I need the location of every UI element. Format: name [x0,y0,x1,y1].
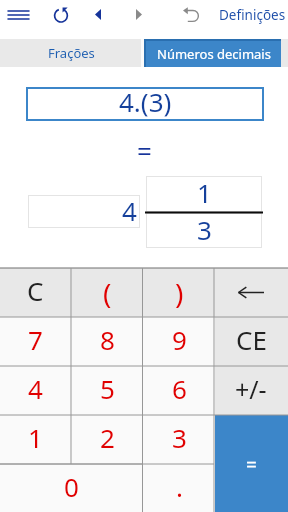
staticText: 9 [172,322,187,357]
staticText: Frações [48,44,95,62]
button[interactable]: 0 [0,464,143,512]
staticText: = [137,133,152,157]
staticText: 5 [100,371,115,406]
staticText: 4 [122,193,137,226]
button[interactable]: = [214,415,288,512]
button[interactable]: 4.(3) [26,87,264,121]
button[interactable]: Refresh [46,0,76,30]
staticText: 3 [172,420,187,455]
staticText: Definições [219,6,286,24]
button[interactable]: 1 [0,415,71,464]
staticText: = [246,452,257,478]
button[interactable]: 9 [143,317,215,366]
staticText: . [176,469,183,504]
button[interactable]: 6 [143,366,215,415]
button[interactable]: 4 [0,366,71,415]
staticText: 7 [28,322,43,357]
staticText: 4 [28,371,43,406]
button[interactable]: ( [71,268,143,317]
button[interactable]: Backspace [214,268,288,317]
button[interactable]: Frações [2,39,141,67]
staticText: 2 [100,420,115,455]
staticText: 1 [197,175,212,210]
staticText: 8 [100,322,115,357]
button[interactable]: . [143,464,215,512]
button[interactable]: +/- [214,366,288,415]
button[interactable]: Next [125,0,153,30]
staticText: CE [236,322,267,357]
staticText: 6 [172,371,187,406]
staticText: 0 [64,469,79,504]
button[interactable]: Previous [84,0,112,30]
staticText: ) [175,274,184,312]
button[interactable]: 8 [71,317,143,366]
staticText: 4.(3) [119,84,172,118]
button[interactable]: 3 [143,415,215,464]
button[interactable]: Menu [3,0,33,30]
staticText: C [27,273,44,308]
button[interactable]: ) [143,268,215,317]
button[interactable]: Undo [176,0,206,30]
button[interactable]: C [0,268,71,317]
staticText: Números decimais [157,45,271,63]
button[interactable]: 7 [0,317,71,366]
button[interactable]: 5 [71,366,143,415]
button[interactable]: 2 [71,415,143,464]
button[interactable]: CE [214,317,288,366]
button[interactable]: Definições [219,0,286,30]
staticText: 1 [28,420,43,455]
staticText: 3 [197,212,212,247]
staticText: ( [103,274,112,312]
button[interactable]: Números decimais [144,39,281,67]
staticText: +/- [235,372,267,406]
